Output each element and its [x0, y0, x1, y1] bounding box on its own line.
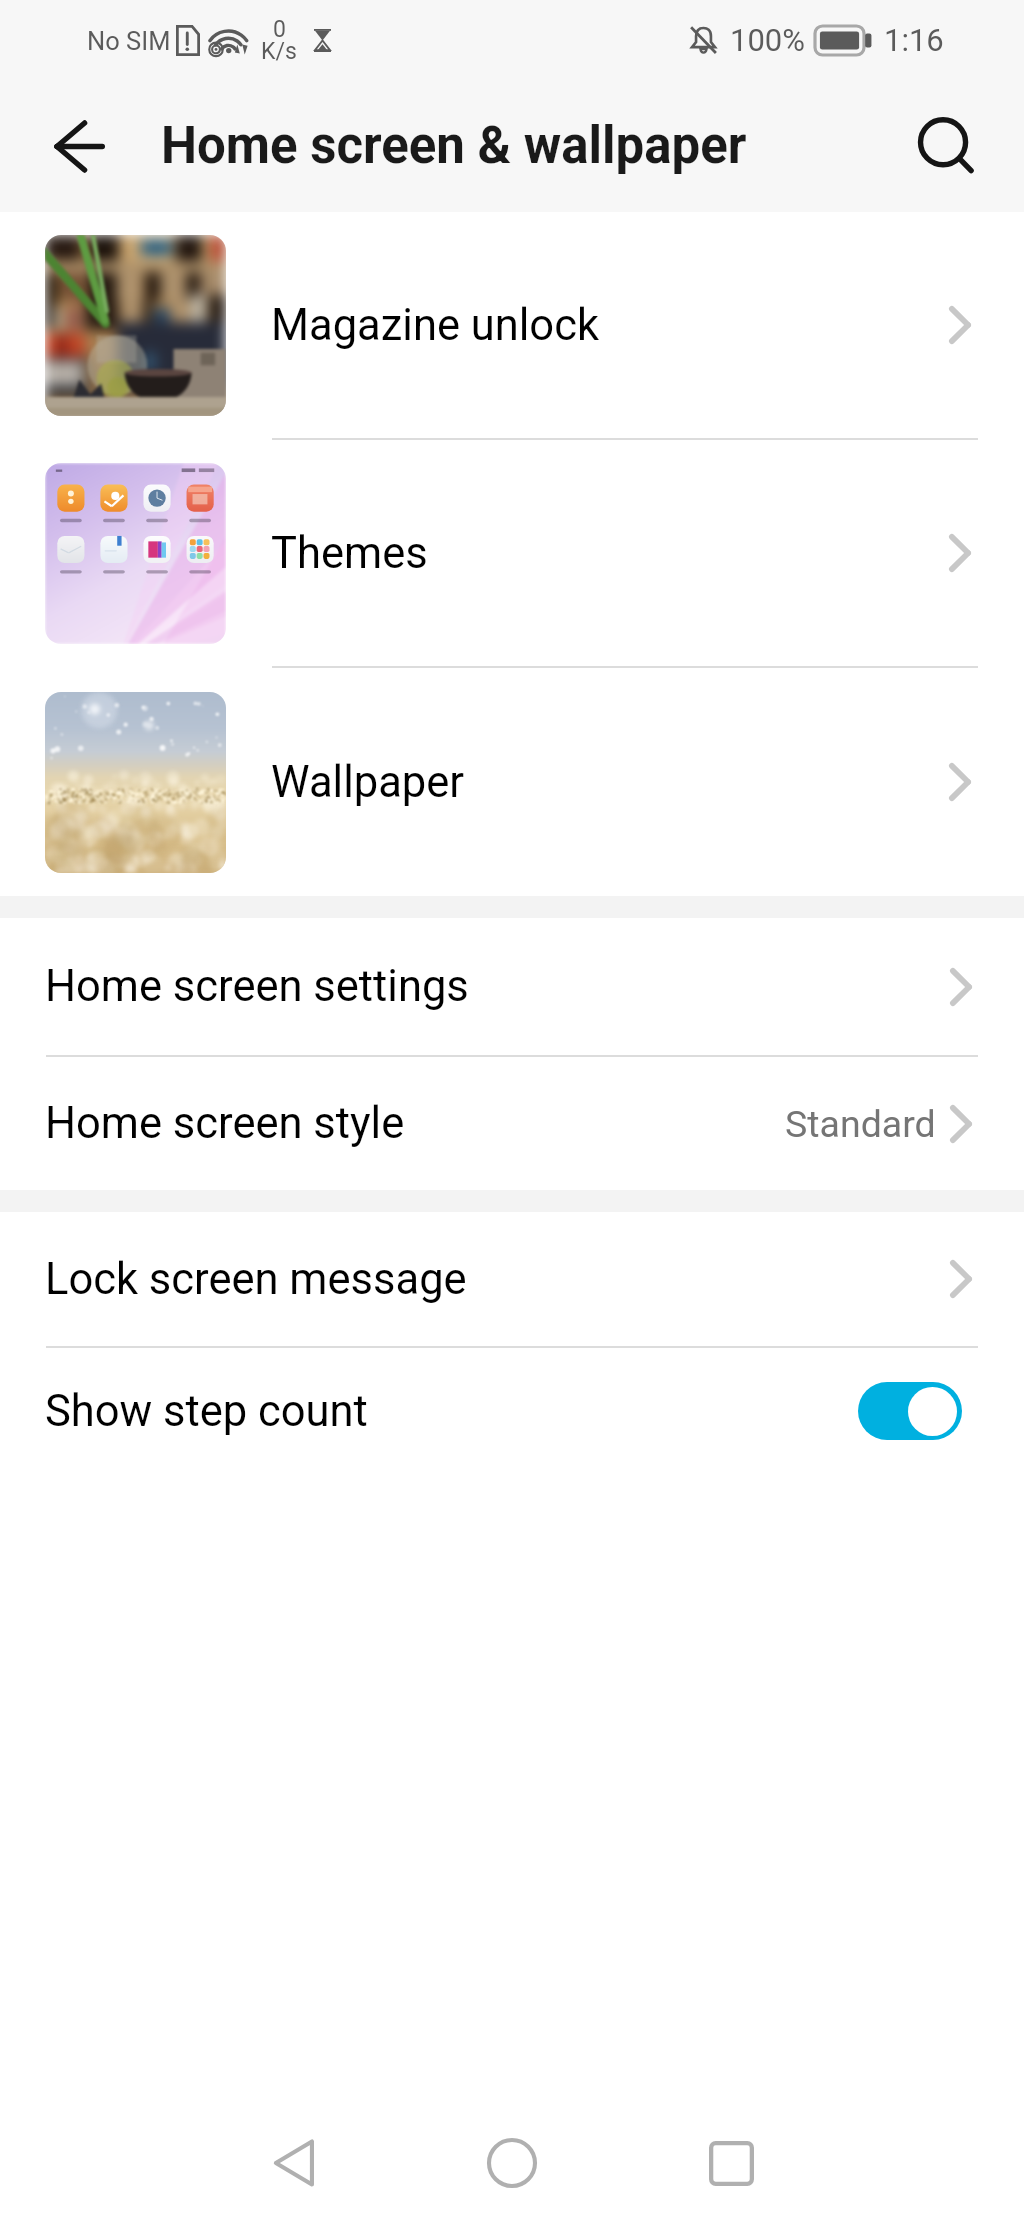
button[interactable]: Show step count	[0, 1348, 1024, 1474]
button[interactable]: Recents	[671, 2107, 791, 2219]
staticText: 0	[273, 16, 286, 43]
staticText: Home screen settings	[45, 961, 469, 1012]
button[interactable]: Lock screen message	[0, 1212, 1024, 1346]
button[interactable]: Home screen settings	[0, 918, 1024, 1055]
staticText: Lock screen message	[45, 1254, 467, 1305]
button[interactable]: Wallpaper	[0, 668, 1024, 896]
staticText: Magazine unlock	[271, 300, 599, 351]
staticText: Home screen style	[45, 1098, 405, 1149]
button[interactable]: Back	[233, 2107, 353, 2219]
staticText: Themes	[271, 528, 428, 579]
staticText: 1:16	[884, 22, 944, 58]
button[interactable]: Search	[900, 100, 992, 192]
staticText: Wallpaper	[271, 757, 465, 808]
button[interactable]: Home screen style	[0, 1057, 1024, 1190]
button[interactable]: Home	[452, 2107, 572, 2219]
button[interactable]: Themes	[0, 440, 1024, 666]
staticText: Standard	[785, 1102, 936, 1146]
staticText: 100%	[730, 22, 805, 58]
staticText: No SIM	[87, 26, 171, 56]
button[interactable]: Magazine unlock	[0, 212, 1024, 438]
staticText: Show step count	[45, 1386, 368, 1437]
button[interactable]: Back	[33, 100, 125, 192]
staticText: K/s	[261, 38, 297, 65]
staticText: Home screen & wallpaper	[161, 116, 747, 176]
